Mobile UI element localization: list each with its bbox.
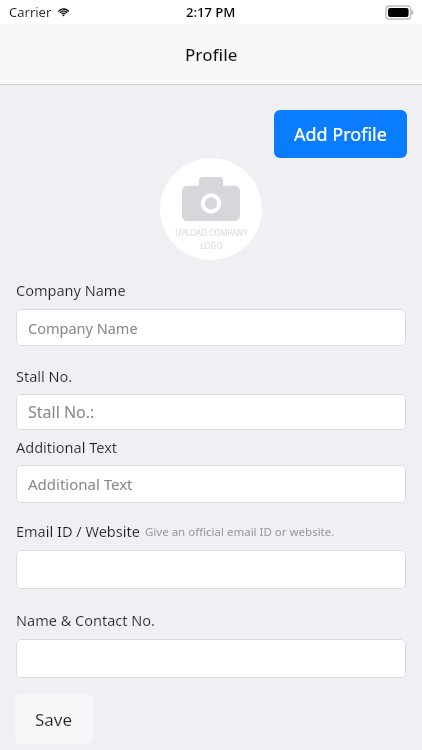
staticText: Name & Contact No. [16, 610, 155, 630]
staticText: Additional Text [28, 474, 133, 494]
staticText: Company Name [28, 318, 138, 338]
staticText: UPLOAD COMPANY [175, 227, 248, 238]
staticText: LOGO [200, 240, 223, 251]
staticText: Company Name [16, 280, 126, 300]
button[interactable]: Additional Text [16, 465, 406, 503]
button[interactable] [16, 639, 406, 678]
staticText: Email ID / Website [16, 521, 140, 541]
button[interactable] [16, 550, 406, 589]
button[interactable]: Upload company logo [160, 158, 262, 260]
staticText: Profile [185, 43, 238, 66]
staticText: Carrier [9, 3, 52, 21]
button[interactable]: Stall No.: [16, 394, 406, 430]
button[interactable]: Save [15, 694, 93, 744]
staticText: Save [35, 708, 73, 731]
staticText: Add Profile [294, 122, 387, 147]
staticText: Stall No.: [28, 401, 95, 423]
button[interactable]: Add Profile [274, 110, 407, 158]
staticText: Additional Text [16, 437, 118, 457]
staticText: Stall No. [16, 366, 73, 386]
button[interactable]: Company Name [16, 309, 406, 346]
staticText: Give an official email ID or website. [145, 524, 335, 540]
staticText: 2:17 PM [186, 3, 236, 21]
